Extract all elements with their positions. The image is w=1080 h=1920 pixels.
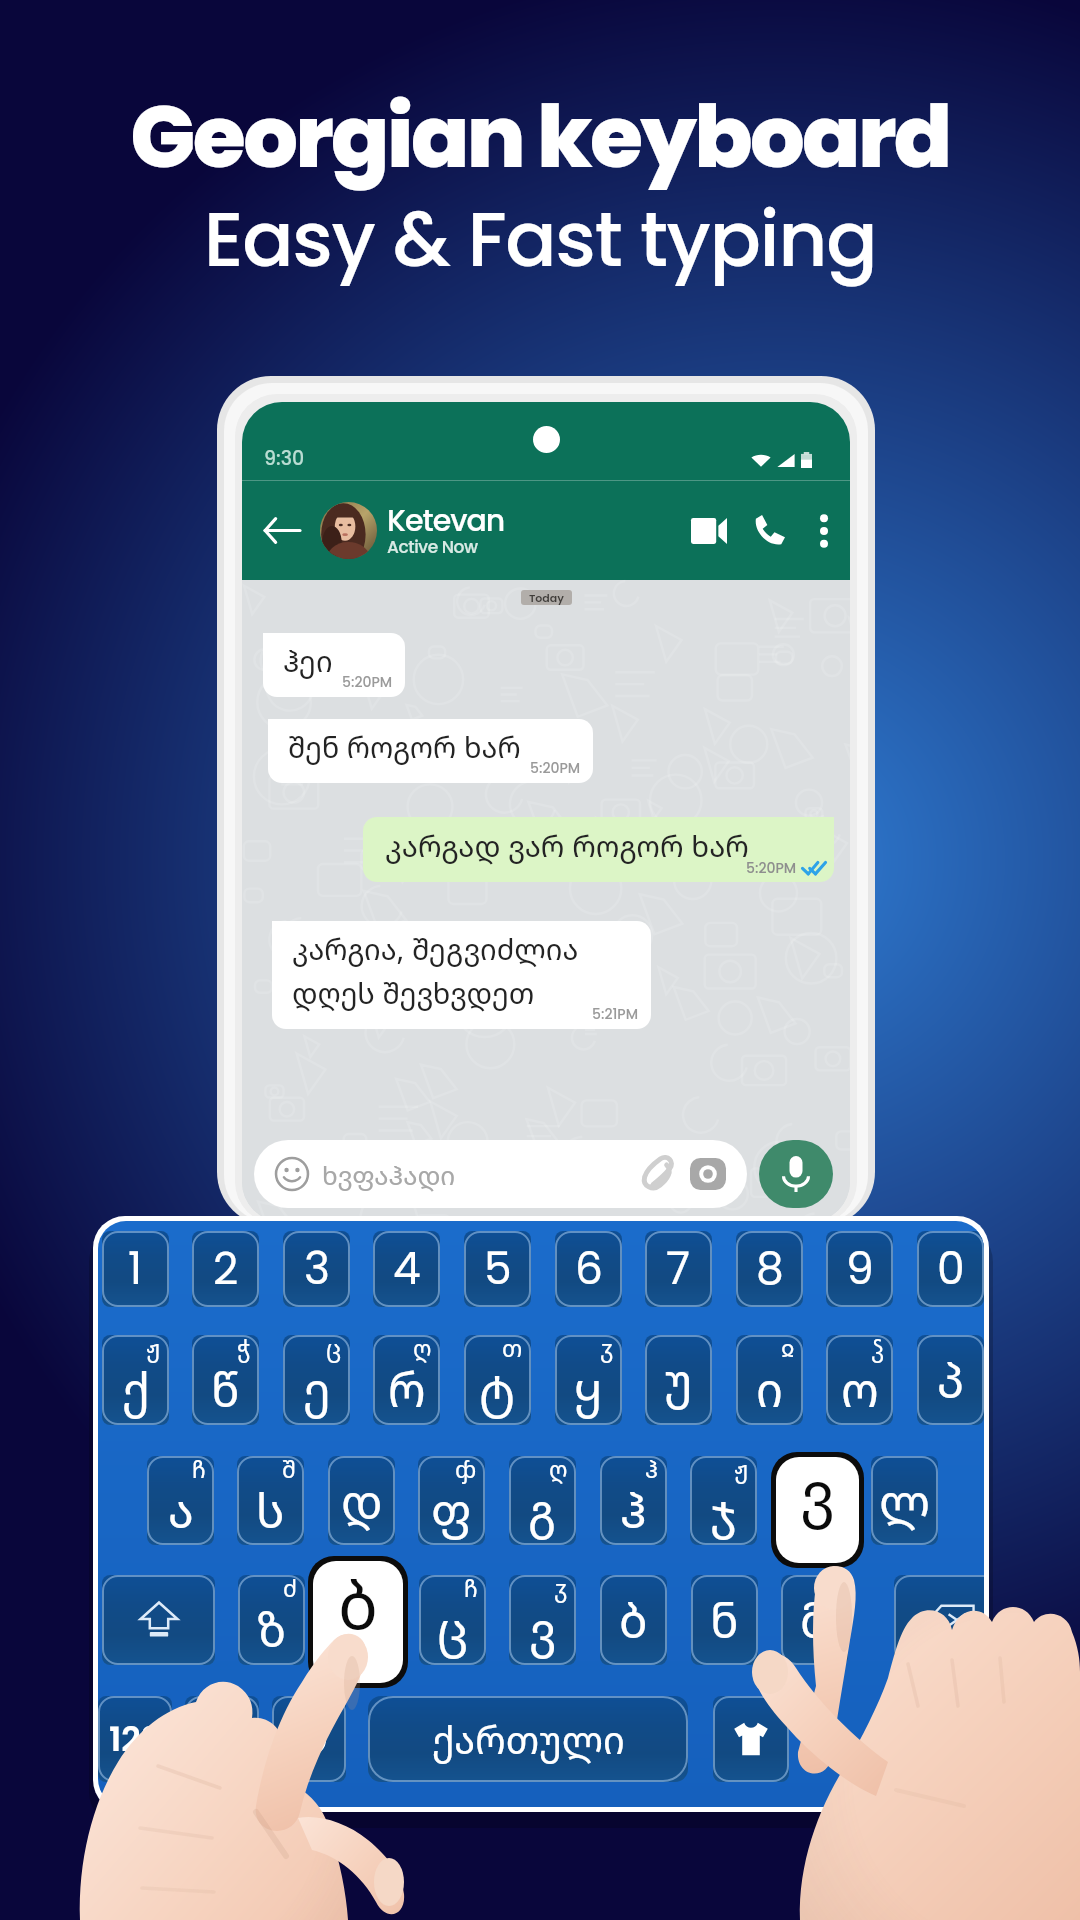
button[interactable]: Video call <box>678 481 740 580</box>
button[interactable]: ქართული <box>368 1696 688 1782</box>
button[interactable]: Shift <box>102 1575 215 1665</box>
staticText: ი <box>756 1357 783 1421</box>
button[interactable]: Ketevan <box>320 481 505 580</box>
staticText: ჰ <box>645 1456 659 1484</box>
staticText: 5:21PM <box>592 1004 639 1024</box>
button[interactable]: 5 <box>464 1231 531 1307</box>
button[interactable]: More options <box>798 481 850 580</box>
button[interactable]: უ <box>645 1335 712 1425</box>
button[interactable]: ფ <box>418 1456 485 1545</box>
staticText: ც <box>326 1335 342 1363</box>
button[interactable]: ზ <box>238 1575 305 1665</box>
button[interactable]: ს <box>237 1456 304 1545</box>
button[interactable]: Comma <box>185 1696 259 1782</box>
staticText: ხ <box>347 1588 376 1652</box>
button[interactable]: ე <box>283 1335 350 1425</box>
button[interactable]: 8 <box>736 1231 803 1307</box>
button[interactable]: ა <box>147 1456 214 1545</box>
staticText: 9:30 <box>264 445 305 472</box>
button[interactable]: ქ <box>102 1335 169 1425</box>
button[interactable]: დ <box>328 1456 395 1545</box>
button[interactable]: ბ <box>600 1575 667 1665</box>
staticText: 5 <box>484 1238 512 1300</box>
button[interactable]: კ <box>781 1456 848 1545</box>
button[interactable]: Camera <box>687 1153 729 1195</box>
staticText: ყ <box>574 1357 603 1421</box>
staticText: შ <box>282 1456 296 1484</box>
staticText: 5:20PM <box>530 758 581 778</box>
staticText: პ <box>937 1348 965 1412</box>
button[interactable]: ყ <box>555 1335 622 1425</box>
button[interactable]: ჰ <box>600 1456 667 1545</box>
staticText: ბ <box>338 1561 378 1649</box>
button[interactable]: პ <box>917 1335 984 1425</box>
button[interactable]: ლ <box>871 1456 938 1545</box>
button[interactable]: 123 <box>98 1696 172 1782</box>
button[interactable]: Record voice message <box>759 1140 833 1208</box>
staticText: ბ <box>619 1588 648 1652</box>
button[interactable]: Emoji <box>272 1154 312 1194</box>
button[interactable]: წ <box>192 1335 259 1425</box>
button[interactable]: Attach file <box>635 1153 677 1195</box>
button[interactable]: 1 <box>102 1231 169 1307</box>
staticText: ღ <box>549 1456 568 1484</box>
button[interactable]: 9 <box>826 1231 893 1307</box>
staticText: 9 <box>846 1238 874 1300</box>
button[interactable]: 3 <box>283 1231 350 1307</box>
button[interactable]: მ <box>781 1575 848 1665</box>
staticText: 5:20PM <box>746 858 797 878</box>
button[interactable]: Emoji <box>272 1696 346 1782</box>
staticText: 3 <box>304 1238 330 1300</box>
button[interactable]: რ <box>373 1335 440 1425</box>
button[interactable]: ნ <box>691 1575 758 1665</box>
button[interactable]: Back <box>242 481 320 580</box>
button[interactable]: გ <box>509 1456 576 1545</box>
button[interactable]: Backspace <box>894 1575 984 1665</box>
staticText: Active Now <box>387 535 478 559</box>
staticText: ქართული <box>432 1713 625 1765</box>
staticText: ჭ <box>237 1335 251 1363</box>
button[interactable]: ი <box>736 1335 803 1425</box>
staticText: ზ <box>257 1597 287 1661</box>
staticText: Today <box>529 590 564 605</box>
staticText: ც <box>437 1597 469 1661</box>
staticText: 5:20PM <box>342 672 393 692</box>
staticText: Easy & Fast typing <box>0 186 1080 292</box>
button[interactable]: 7 <box>645 1231 712 1307</box>
button[interactable]: 0 <box>917 1231 984 1307</box>
staticText: 123 <box>109 1715 162 1763</box>
staticText: კ <box>801 1469 828 1533</box>
staticText: უ <box>664 1348 693 1412</box>
staticText: ჳ <box>554 1575 568 1603</box>
staticText: წ <box>211 1357 240 1421</box>
staticText: 7 <box>666 1238 691 1300</box>
staticText: ხვფაჰადი <box>322 1157 456 1192</box>
staticText: 4 <box>393 1238 421 1300</box>
button[interactable]: ხ <box>328 1575 395 1665</box>
staticText: თ <box>502 1335 523 1363</box>
staticText: 2 <box>213 1238 239 1300</box>
button[interactable]: 2 <box>192 1231 259 1307</box>
button[interactable]: ვ <box>509 1575 576 1665</box>
staticText: კარგია, შეგვიძლია დღეს შევხვდეთ <box>292 929 579 1012</box>
button[interactable]: ო <box>826 1335 893 1425</box>
staticText: ფ <box>431 1478 472 1542</box>
staticText: ა <box>168 1478 194 1542</box>
staticText: შენ როგორ ხარ <box>288 727 521 766</box>
button[interactable]: 6 <box>555 1231 622 1307</box>
button[interactable]: 4 <box>373 1231 440 1307</box>
button[interactable]: Theme <box>713 1696 789 1782</box>
staticText: ჰ <box>620 1478 647 1542</box>
staticText: ჟ <box>146 1335 161 1363</box>
button[interactable]: ჯ <box>690 1456 757 1545</box>
button[interactable]: Emoji <box>254 1140 747 1208</box>
button[interactable]: ტ <box>464 1335 531 1425</box>
staticText: 6 <box>575 1238 603 1300</box>
staticText: ს <box>256 1478 285 1542</box>
staticText: 8 <box>756 1238 784 1300</box>
button[interactable]: ც <box>419 1575 486 1665</box>
staticText: ჲ <box>781 1335 795 1363</box>
staticText: ე <box>303 1357 331 1421</box>
button[interactable]: Voice call <box>740 481 798 580</box>
staticText: ჟ <box>734 1456 749 1484</box>
